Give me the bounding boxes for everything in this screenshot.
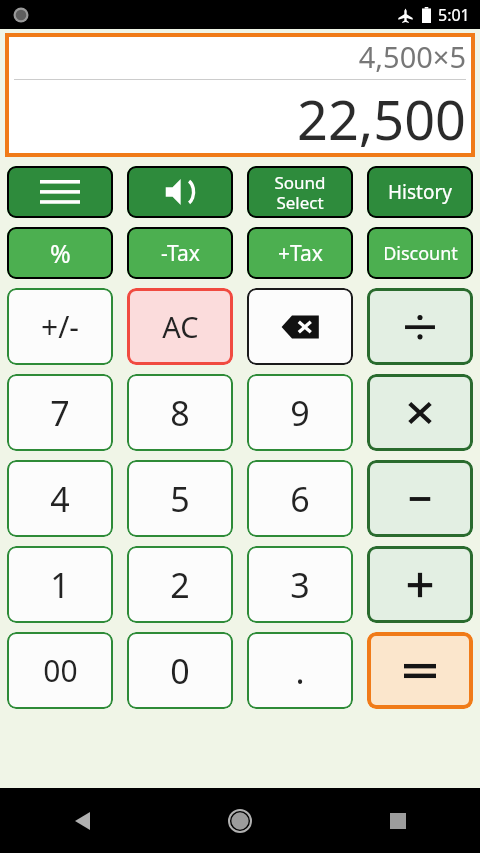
staticText: -Tax bbox=[161, 239, 200, 268]
button[interactable]: 7 bbox=[7, 374, 113, 451]
button[interactable]: Plus bbox=[367, 546, 473, 623]
button[interactable]: 00 bbox=[7, 632, 113, 709]
button[interactable]: % bbox=[7, 227, 113, 279]
button[interactable]: 9 bbox=[247, 374, 353, 451]
button[interactable]: +/- bbox=[7, 288, 113, 365]
button[interactable]: AC bbox=[127, 288, 233, 365]
staticText: 00 bbox=[43, 650, 78, 691]
staticText: % bbox=[50, 236, 71, 270]
button[interactable]: 3 bbox=[247, 546, 353, 623]
staticText: 4 bbox=[50, 476, 70, 522]
staticText: 4,500×5 bbox=[358, 37, 466, 76]
button[interactable]: Back bbox=[60, 799, 104, 843]
button[interactable]: 1 bbox=[7, 546, 113, 623]
button[interactable]: -Tax bbox=[127, 227, 233, 279]
staticText: 9 bbox=[290, 390, 310, 436]
staticText: 0 bbox=[170, 648, 190, 694]
button[interactable]: 6 bbox=[247, 460, 353, 537]
staticText: 5 bbox=[170, 476, 190, 522]
button[interactable]: 0 bbox=[127, 632, 233, 709]
staticText: Sound Select bbox=[274, 171, 326, 214]
button[interactable]: Minus bbox=[367, 460, 473, 537]
staticText: +/- bbox=[41, 306, 79, 347]
button[interactable]: 8 bbox=[127, 374, 233, 451]
button[interactable]: Equals bbox=[367, 632, 473, 709]
button[interactable]: Sound Select bbox=[247, 166, 353, 218]
button[interactable]: Backspace bbox=[247, 288, 353, 365]
staticText: 5:01 bbox=[438, 4, 470, 26]
button[interactable]: 2 bbox=[127, 546, 233, 623]
staticText: 7 bbox=[50, 390, 70, 436]
staticText: 6 bbox=[290, 476, 310, 522]
button[interactable]: Discount bbox=[367, 227, 473, 279]
button[interactable]: 5 bbox=[127, 460, 233, 537]
button[interactable]: Home bbox=[218, 799, 262, 843]
button[interactable]: +Tax bbox=[247, 227, 353, 279]
button[interactable]: Multiply bbox=[367, 374, 473, 451]
staticText: Discount bbox=[383, 241, 458, 266]
button[interactable]: History bbox=[367, 166, 473, 218]
button[interactable]: 4 bbox=[7, 460, 113, 537]
staticText: 8 bbox=[170, 390, 190, 436]
staticText: History bbox=[388, 179, 452, 205]
button[interactable]: Sound bbox=[127, 166, 233, 218]
staticText: 2 bbox=[170, 562, 190, 608]
staticText: AC bbox=[162, 307, 199, 346]
staticText: +Tax bbox=[278, 239, 323, 268]
button[interactable]: . bbox=[247, 632, 353, 709]
staticText: . bbox=[295, 648, 305, 694]
staticText: 3 bbox=[290, 562, 310, 608]
button[interactable]: Divide bbox=[367, 288, 473, 365]
button[interactable]: Recents bbox=[376, 799, 420, 843]
staticText: 1 bbox=[50, 562, 70, 608]
staticText: 22,500 bbox=[297, 82, 466, 156]
button[interactable]: Menu bbox=[7, 166, 113, 218]
